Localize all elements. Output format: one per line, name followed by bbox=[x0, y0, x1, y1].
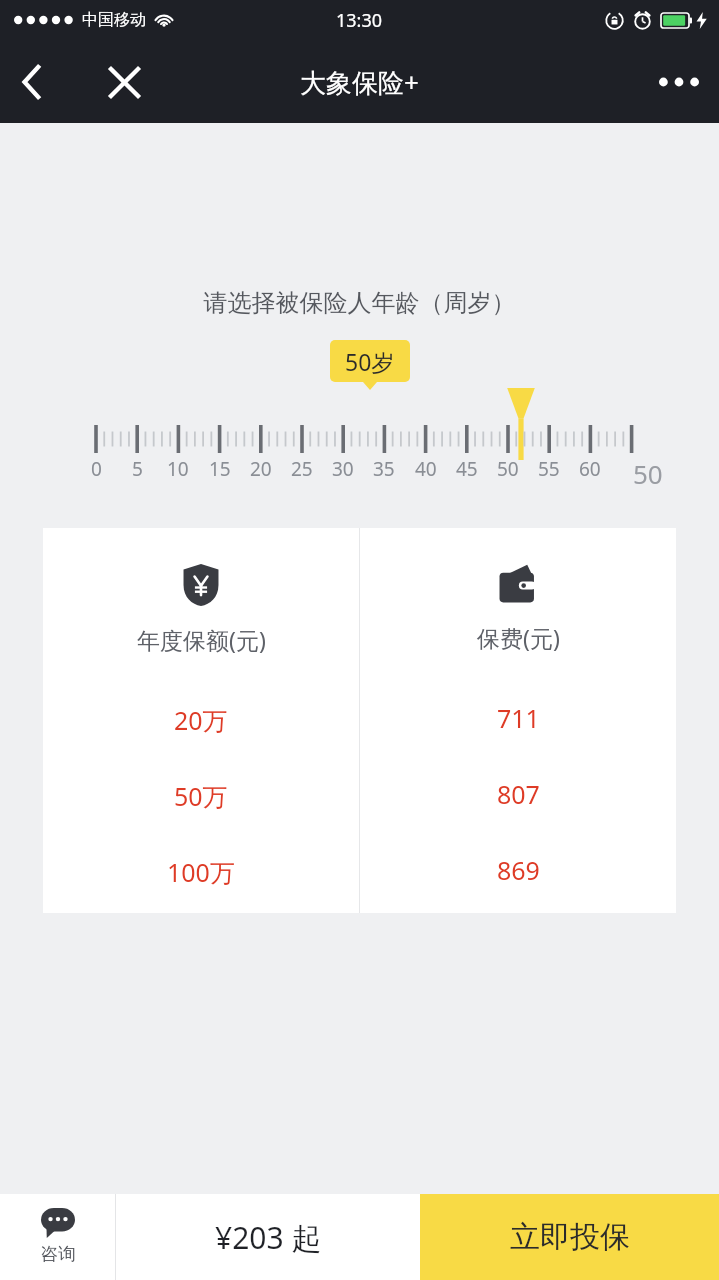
button[interactable]: 咨询 bbox=[0, 1194, 115, 1280]
staticText: 15 bbox=[209, 456, 231, 482]
staticText: 50万 bbox=[174, 779, 228, 813]
staticText: 30 bbox=[332, 456, 354, 482]
staticText: 10 bbox=[167, 456, 189, 482]
button[interactable]: ¥203 起 bbox=[116, 1194, 420, 1280]
staticText: 50岁 bbox=[345, 346, 395, 377]
staticText: 60 bbox=[579, 456, 601, 482]
button[interactable]: Back bbox=[6, 56, 58, 108]
staticText: 711 bbox=[497, 701, 540, 735]
staticText: ¥203 起 bbox=[215, 1217, 322, 1258]
staticText: 807 bbox=[497, 777, 540, 811]
staticText: 50 bbox=[497, 456, 519, 482]
staticText: 大象保险+ bbox=[300, 64, 419, 100]
staticText: 13:30 bbox=[336, 8, 383, 33]
staticText: 0 bbox=[91, 456, 102, 482]
staticText: 55 bbox=[538, 456, 560, 482]
staticText: 中国移动 bbox=[82, 10, 146, 30]
staticText: 年度保额(元) bbox=[137, 624, 266, 655]
staticText: 立即投保 bbox=[510, 1218, 630, 1256]
staticText: 20万 bbox=[174, 703, 228, 737]
button[interactable]: 年度保额(元) bbox=[43, 528, 359, 913]
button[interactable]: 保费(元) bbox=[360, 528, 676, 913]
staticText: 50 bbox=[633, 456, 663, 491]
staticText: 40 bbox=[415, 456, 437, 482]
staticText: 869 bbox=[497, 853, 540, 887]
staticText: 100万 bbox=[167, 855, 235, 889]
staticText: 咨询 bbox=[40, 1243, 76, 1266]
staticText: 45 bbox=[456, 456, 478, 482]
button[interactable]: More options bbox=[651, 54, 707, 110]
staticText: 保费(元) bbox=[477, 622, 560, 653]
staticText: 25 bbox=[291, 456, 313, 482]
button[interactable]: 立即投保 bbox=[420, 1194, 719, 1280]
staticText: 请选择被保险人年龄（周岁） bbox=[0, 288, 719, 318]
staticText: 5 bbox=[132, 456, 143, 482]
staticText: 20 bbox=[250, 456, 272, 482]
button[interactable]: Close bbox=[98, 56, 150, 108]
staticText: 35 bbox=[373, 456, 395, 482]
